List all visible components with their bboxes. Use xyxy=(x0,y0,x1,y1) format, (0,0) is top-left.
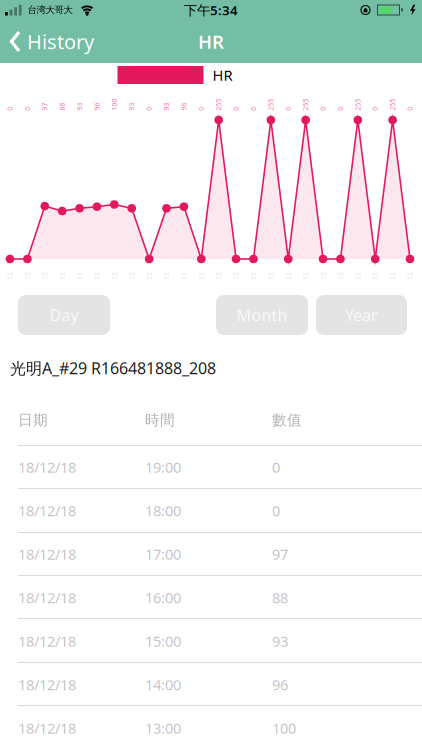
staticText: 18/12/18 xyxy=(18,501,76,520)
staticText: 0 xyxy=(272,457,280,477)
staticText: 12 xyxy=(76,272,84,280)
staticText: 13:00 xyxy=(145,718,181,738)
staticText: 12 xyxy=(128,272,136,280)
staticText: 0 xyxy=(199,104,203,113)
button[interactable]: Back to History xyxy=(0,20,94,63)
staticText: 0 xyxy=(286,104,290,113)
staticText: 96 xyxy=(93,102,101,111)
staticText: 0 xyxy=(338,104,342,113)
staticText: 93 xyxy=(162,102,170,111)
staticText: 0 xyxy=(147,104,151,113)
staticText: 12 xyxy=(249,272,257,280)
staticText: HR xyxy=(198,29,224,54)
button[interactable]: Day xyxy=(18,295,110,335)
staticText: 15:00 xyxy=(145,631,181,651)
staticText: 88 xyxy=(58,102,66,111)
staticText: 12 xyxy=(284,272,292,280)
staticText: 18/12/18 xyxy=(18,544,76,564)
staticText: 14:00 xyxy=(145,675,181,694)
staticText: 12 xyxy=(267,272,275,280)
staticText: 0 xyxy=(272,501,280,520)
staticText: 12 xyxy=(145,272,153,280)
staticText: Day xyxy=(49,304,78,326)
staticText: 255 xyxy=(387,100,399,109)
staticText: 12 xyxy=(41,272,49,280)
staticText: 97 xyxy=(41,102,49,111)
staticText: 18/12/18 xyxy=(18,631,76,651)
staticText: 12 xyxy=(232,272,240,280)
staticText: 12 xyxy=(162,272,170,280)
staticText: 18/12/18 xyxy=(18,718,76,738)
staticText: 96 xyxy=(180,102,188,111)
staticText: 下午5:34 xyxy=(184,1,238,19)
staticText: 數值 xyxy=(272,411,302,429)
staticText: 時間 xyxy=(145,411,175,429)
staticText: 12 xyxy=(180,272,188,280)
staticText: 255 xyxy=(265,100,277,109)
staticText: 12 xyxy=(6,272,14,280)
staticText: 0 xyxy=(25,104,29,113)
staticText: 255 xyxy=(352,100,364,109)
staticText: 93 xyxy=(76,102,84,111)
staticText: 18:00 xyxy=(145,501,181,520)
staticText: 日期 xyxy=(18,411,48,429)
staticText: 255 xyxy=(300,100,312,109)
staticText: 0 xyxy=(373,104,377,113)
staticText: 12 xyxy=(197,272,205,280)
staticText: 19:00 xyxy=(145,457,181,477)
staticText: 97 xyxy=(272,544,288,564)
button[interactable]: Month xyxy=(216,295,308,335)
staticText: 18/12/18 xyxy=(18,588,76,607)
staticText: 88 xyxy=(272,588,288,607)
staticText: 12 xyxy=(354,272,362,280)
staticText: 0 xyxy=(234,104,238,113)
staticText: 18/12/18 xyxy=(18,675,76,694)
staticText: 12 xyxy=(319,272,327,280)
staticText: Year xyxy=(345,304,378,326)
staticText: 12 xyxy=(336,272,344,280)
staticText: 0 xyxy=(321,104,325,113)
staticText: 台湾大哥大 xyxy=(28,4,73,16)
staticText: 12 xyxy=(389,272,397,280)
staticText: 16:00 xyxy=(145,588,181,607)
staticText: 100 xyxy=(108,100,120,109)
staticText: 100 xyxy=(272,718,296,738)
staticText: 0 xyxy=(408,104,412,113)
staticText: 0 xyxy=(251,104,255,113)
staticText: 12 xyxy=(215,272,223,280)
staticText: 96 xyxy=(272,675,288,694)
staticText: 12 xyxy=(406,272,414,280)
staticText: 93 xyxy=(272,631,288,651)
staticText: 12 xyxy=(23,272,31,280)
staticText: 17:00 xyxy=(145,544,181,564)
staticText: Month xyxy=(236,304,287,326)
staticText: History xyxy=(27,28,94,55)
staticText: 0 xyxy=(8,104,12,113)
staticText: 12 xyxy=(93,272,101,280)
staticText: 18/12/18 xyxy=(18,457,76,477)
staticText: 12 xyxy=(58,272,66,280)
button[interactable]: Year xyxy=(316,295,407,335)
staticText: 光明A_#29 R166481888_208 xyxy=(10,357,216,379)
staticText: 12 xyxy=(302,272,310,280)
staticText: 12 xyxy=(110,272,118,280)
staticText: 12 xyxy=(371,272,379,280)
staticText: 255 xyxy=(213,100,225,109)
staticText: 93 xyxy=(128,102,136,111)
staticText: HR xyxy=(212,65,232,85)
